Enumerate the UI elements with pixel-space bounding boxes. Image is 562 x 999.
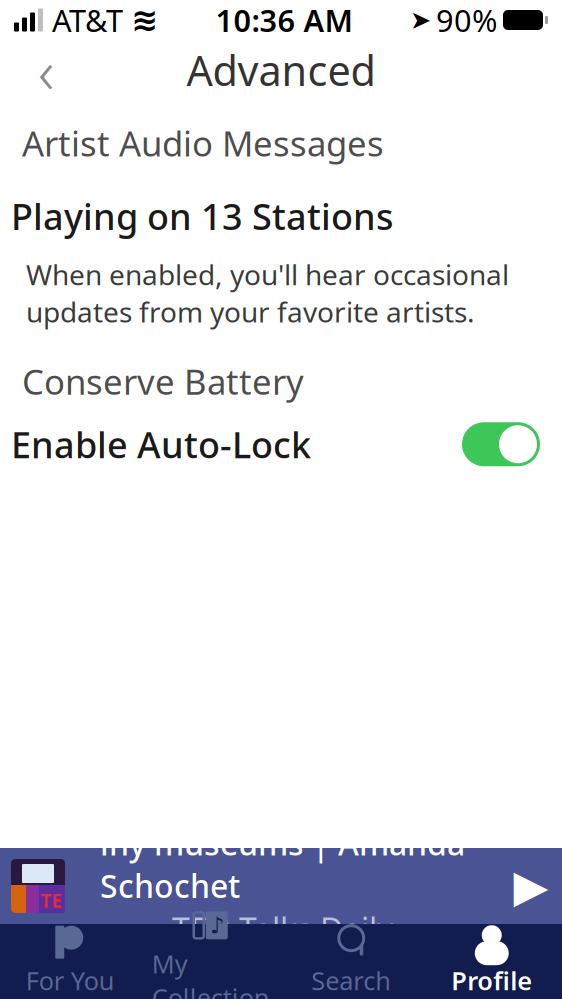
button[interactable]: Back [14,42,78,98]
staticText: AT&T [52,0,123,40]
button[interactable]: Enable Auto-Start [0,875,562,927]
button[interactable]: Search [281,924,421,999]
staticText: My Collection [152,947,270,999]
staticText: For You [26,964,115,997]
staticText: iny museums | Amanda Schochet [100,822,465,907]
staticText: Profile [451,964,532,997]
button[interactable]: Enable Auto-Lock [0,418,562,470]
staticText: When enabled, you'll hear occasional upd… [26,256,509,330]
staticText: ‹ [38,29,54,111]
staticText: ≋ [131,2,158,38]
staticText: 10:36 AM [215,0,352,40]
staticText: Auto-Start [22,815,188,861]
staticText: ➤ [410,6,431,34]
staticText: Conserve Battery [22,358,304,404]
button[interactable]: Profile [421,924,562,999]
staticText: TED Talks Daily [172,908,393,950]
staticText: Advanced [186,43,375,97]
button[interactable]: TE [0,848,562,924]
staticText: When enabled, audio will resume playing … [26,941,460,999]
staticText: ▶ [513,860,548,912]
staticText: Artist Audio Messages [22,120,384,166]
staticText: TE [41,888,62,913]
staticText: Search [311,964,391,997]
staticText: Enable Auto-Start [11,877,316,925]
button[interactable]: For You [0,924,140,999]
button[interactable]: ♪ [140,924,281,999]
staticText: Enable Auto-Lock [11,420,311,468]
staticText: 90% [436,0,497,40]
staticText: Playing on 13 Stations [11,192,393,240]
button[interactable]: Play [500,855,562,917]
staticText: ♪ [210,912,224,938]
